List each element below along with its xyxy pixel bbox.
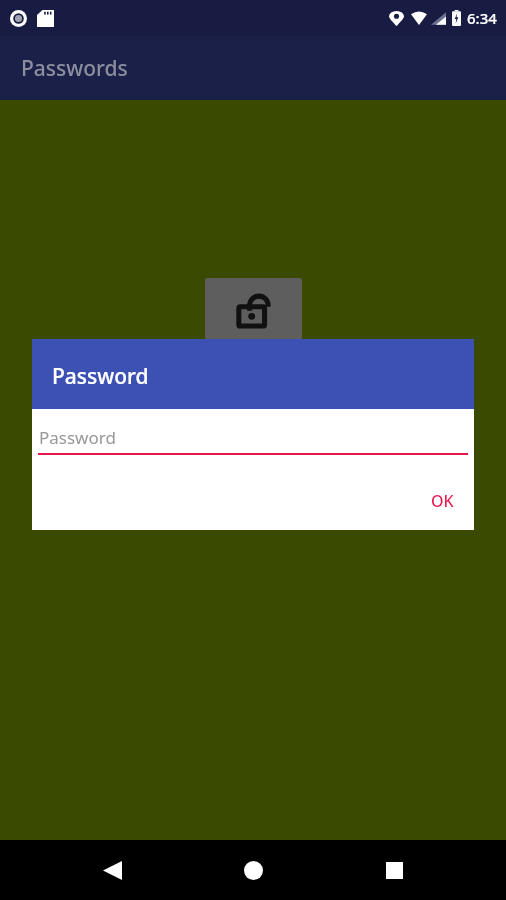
staticText: Password <box>39 426 116 449</box>
button[interactable]: Recent apps <box>366 842 422 898</box>
staticText: 6:34 <box>467 8 497 28</box>
button[interactable]: Home <box>225 842 281 898</box>
staticText: OK <box>431 490 454 512</box>
button[interactable]: Unlock <box>205 278 302 340</box>
button[interactable]: OK <box>415 480 470 522</box>
staticText: Password <box>52 362 149 391</box>
button[interactable]: Back <box>84 842 140 898</box>
staticText: Passwords <box>21 54 128 83</box>
